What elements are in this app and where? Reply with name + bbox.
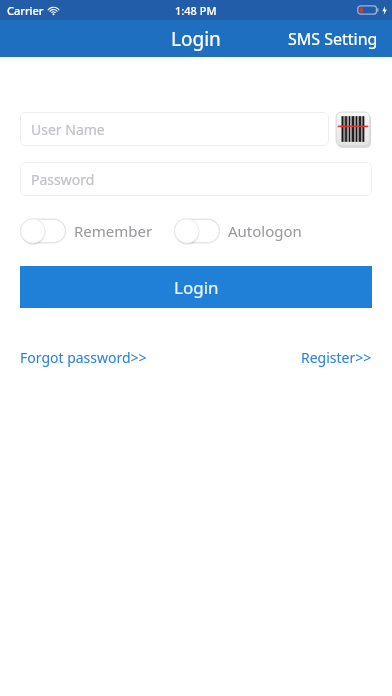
button[interactable]: Password bbox=[20, 162, 372, 196]
button[interactable]: SMS Setting bbox=[274, 22, 392, 56]
staticText: Login bbox=[174, 276, 219, 299]
staticText: Autologon bbox=[228, 221, 302, 241]
staticText: Password bbox=[31, 170, 95, 189]
staticText: Carrier bbox=[7, 3, 44, 18]
button[interactable]: Scan barcode bbox=[334, 110, 372, 148]
button[interactable]: Remember bbox=[20, 213, 153, 249]
staticText: Login bbox=[171, 26, 221, 52]
button[interactable]: User Name bbox=[20, 112, 329, 146]
button[interactable]: Forgot password>> bbox=[20, 345, 147, 370]
button[interactable]: Register>> bbox=[301, 345, 372, 370]
button[interactable]: Login bbox=[20, 266, 372, 308]
staticText: SMS Setting bbox=[288, 28, 378, 50]
button[interactable]: Autologon bbox=[174, 213, 302, 249]
staticText: Register>> bbox=[301, 348, 372, 367]
staticText: User Name bbox=[31, 120, 105, 139]
staticText: Remember bbox=[74, 221, 153, 241]
staticText: Forgot password>> bbox=[20, 348, 147, 367]
staticText: 1:48 PM bbox=[175, 3, 217, 18]
